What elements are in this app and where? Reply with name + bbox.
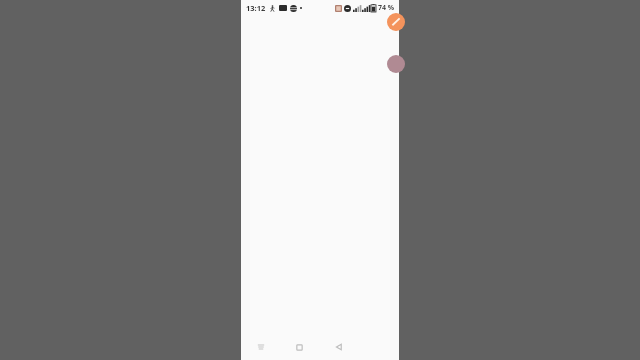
button[interactable]: Back: [319, 334, 359, 360]
button[interactable]: Recent apps: [241, 334, 280, 360]
button[interactable]: Compose: [387, 13, 405, 31]
button[interactable]: Home: [280, 334, 319, 360]
staticText: 13:12: [246, 3, 266, 13]
button[interactable]: Action: [387, 55, 405, 73]
staticText: 74 %: [378, 3, 395, 13]
